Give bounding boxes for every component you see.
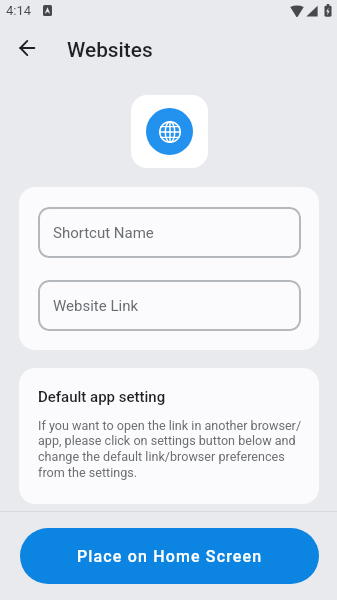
staticText: Website Link: [53, 297, 139, 315]
staticText: Place on Home Screen: [77, 547, 263, 566]
staticText: If you want to open the link in another …: [38, 418, 308, 481]
staticText: 4:14: [6, 3, 32, 18]
button[interactable]: Website Link: [38, 280, 301, 331]
staticText: Default app setting: [38, 388, 166, 406]
button[interactable]: Place on Home Screen: [20, 528, 319, 584]
button[interactable]: Back: [10, 31, 44, 65]
staticText: Websites: [67, 38, 153, 62]
staticText: Shortcut Name: [53, 224, 154, 242]
button[interactable]: Shortcut Name: [38, 207, 301, 258]
